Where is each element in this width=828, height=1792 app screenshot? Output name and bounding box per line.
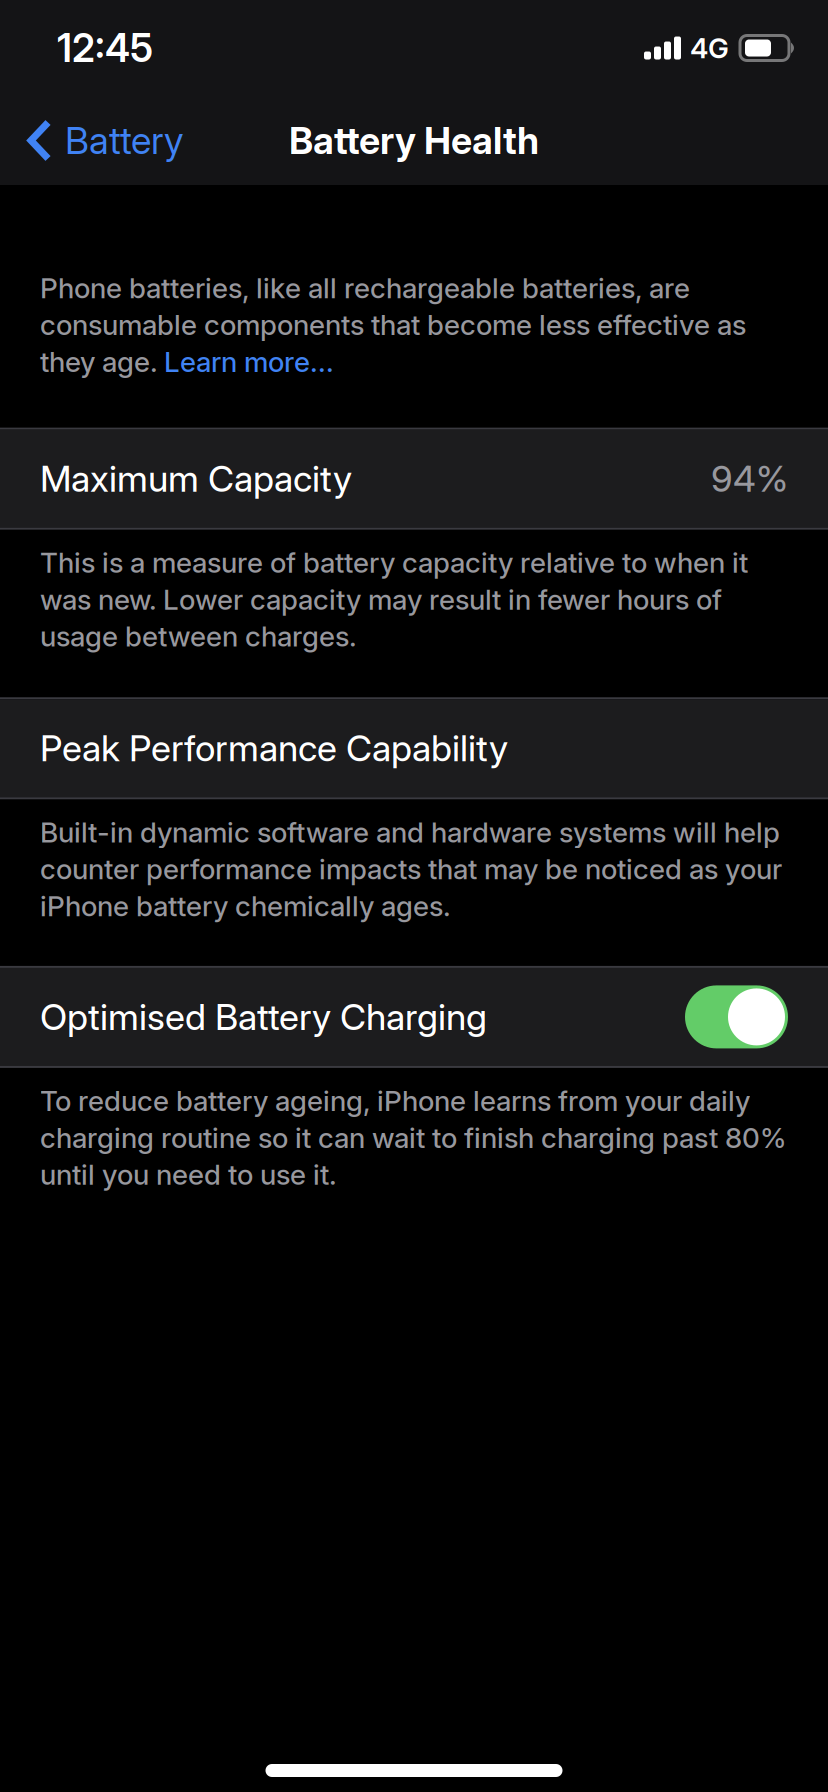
staticText: 94%	[711, 457, 788, 500]
button[interactable]: Optimised Battery Charging	[0, 966, 828, 1068]
staticText: consumable components that become less e…	[40, 308, 746, 342]
staticText: Optimised Battery Charging	[40, 995, 487, 1039]
button[interactable]: Battery	[0, 96, 202, 185]
staticText: Maximum Capacity	[40, 457, 352, 500]
staticText: Built-in dynamic software and hardware s…	[40, 815, 782, 923]
staticText: Peak Performance Capability	[40, 726, 508, 770]
staticText: Learn more...	[164, 345, 334, 379]
button[interactable]: Learn more...	[164, 345, 334, 379]
staticText: This is a measure of battery capacity re…	[40, 546, 748, 653]
staticText: Phone batteries, like all rechargeable b…	[40, 271, 690, 305]
staticText: To reduce battery ageing, iPhone learns …	[40, 1084, 786, 1191]
staticText: 12:45	[57, 25, 153, 71]
staticText: Battery	[65, 118, 184, 163]
staticText: they age.	[40, 345, 164, 379]
staticText: 4G	[690, 31, 729, 65]
staticText: Battery Health	[289, 118, 539, 163]
